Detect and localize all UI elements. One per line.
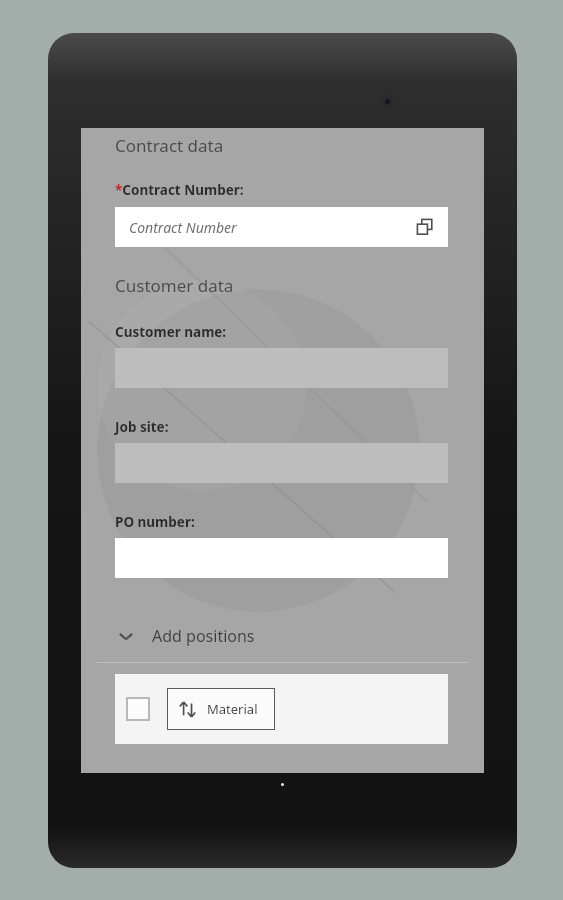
staticText: Add positions — [152, 625, 255, 647]
button[interactable]: Add positions — [81, 620, 484, 652]
button[interactable]: Select position — [125, 696, 151, 722]
staticText: Material — [207, 700, 258, 718]
button[interactable]: Contract Number — [115, 207, 448, 247]
staticText: Customer name: — [115, 323, 227, 341]
staticText: Contract data — [115, 134, 224, 152]
staticText: Customer data — [115, 274, 234, 297]
button[interactable]: Contract data — [81, 128, 484, 146]
staticText: Job site: — [115, 418, 169, 436]
button[interactable]: Copy contract number — [408, 210, 442, 244]
staticText: *Contract Number: — [115, 181, 244, 199]
staticText: Contract Number — [129, 218, 237, 237]
button[interactable]: Material — [167, 688, 275, 730]
staticText: PO number: — [115, 513, 195, 531]
button[interactable]: Select position — [115, 674, 448, 744]
